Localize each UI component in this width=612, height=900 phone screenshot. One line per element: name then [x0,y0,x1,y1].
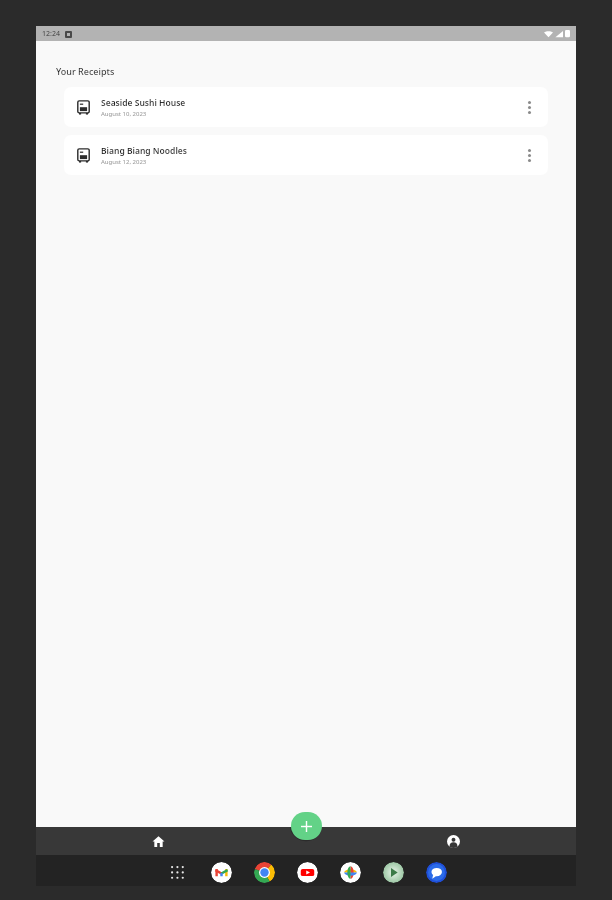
staticText: 12:24 [42,29,60,39]
button[interactable]: Biang Biang Noodles [64,135,548,175]
button[interactable]: Chrome [254,862,275,883]
button[interactable]: All apps [165,860,189,884]
staticText: Biang Biang Noodles [101,145,187,157]
button[interactable]: Add receipt [291,812,322,840]
button[interactable]: Account [331,827,576,855]
button[interactable]: More options [516,94,542,120]
button[interactable]: YouTube [297,862,318,883]
staticText: Seaside Sushi House [101,97,186,109]
button[interactable]: More options [516,142,542,168]
button[interactable]: Seaside Sushi House [64,87,548,127]
button[interactable]: Photos [340,862,361,883]
staticText: August 10, 2023 [101,110,147,118]
button[interactable]: Messages [426,862,447,883]
button[interactable]: Gmail [211,862,232,883]
staticText: August 12, 2023 [101,158,147,166]
staticText: Your Receipts [56,65,115,77]
button[interactable]: Play Store [383,862,404,883]
button[interactable]: Home [36,827,281,855]
